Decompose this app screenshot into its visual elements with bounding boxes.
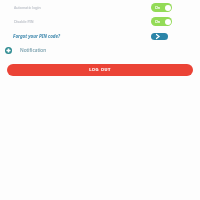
button[interactable]: Disable PIN — [0, 15, 200, 27]
staticText: Forgot your PIN code? — [13, 33, 61, 39]
staticText: On — [155, 19, 161, 24]
button[interactable]: Notification — [0, 44, 200, 56]
staticText: Automatic login — [14, 5, 41, 10]
button[interactable]: LOG OUT — [7, 64, 193, 76]
button[interactable]: Forgot your PIN code? — [13, 33, 61, 39]
button[interactable]: Automatic login — [0, 1, 200, 13]
button[interactable]: Toggle on — [151, 3, 172, 12]
staticText: LOG OUT — [89, 67, 111, 72]
staticText: On — [155, 5, 161, 10]
staticText: Notification — [20, 47, 47, 54]
staticText: Disable PIN — [14, 19, 34, 24]
button[interactable]: Toggle on — [151, 17, 172, 26]
button[interactable]: Next — [151, 33, 168, 40]
